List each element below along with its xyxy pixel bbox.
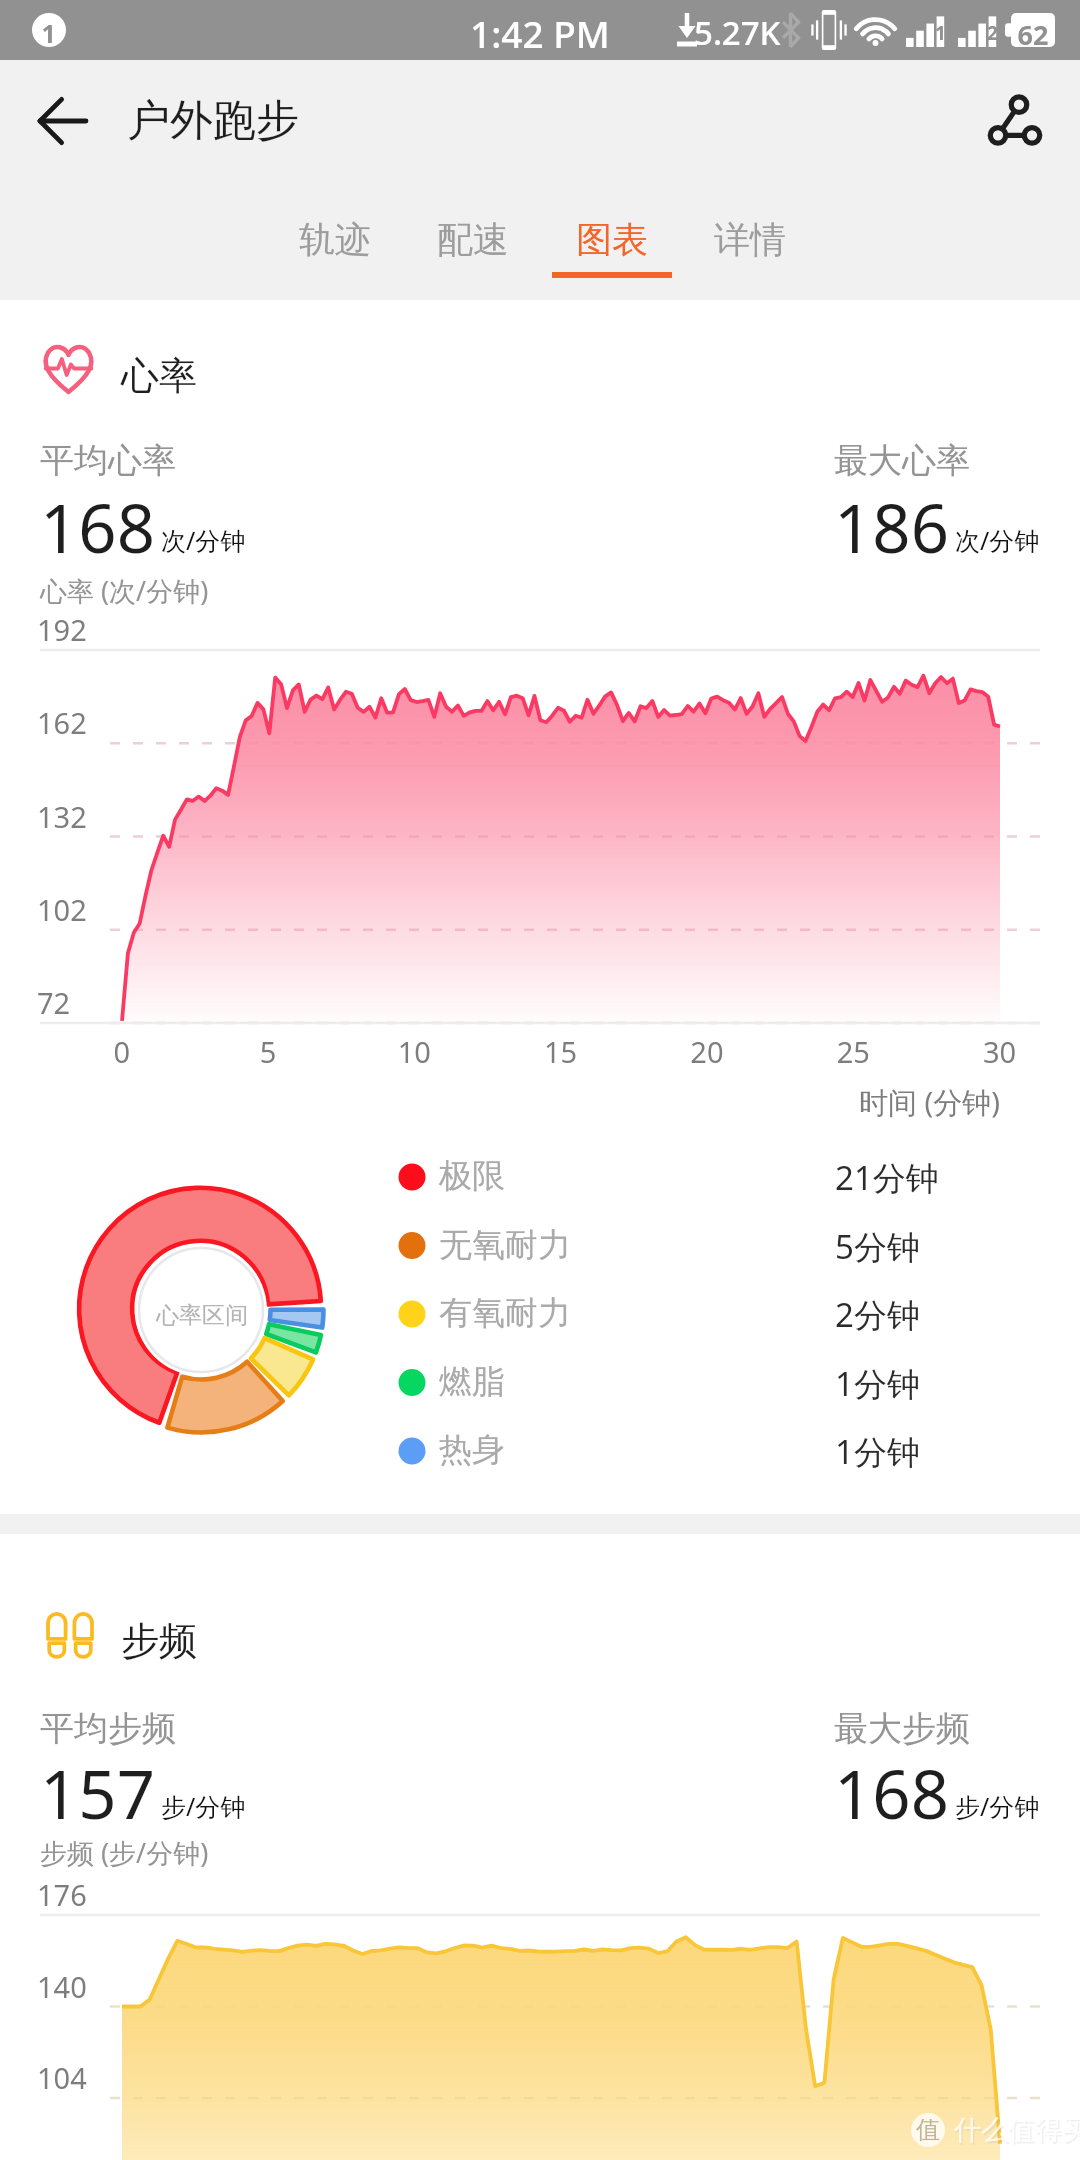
button[interactable] bbox=[558, 190, 666, 286]
button[interactable] bbox=[281, 190, 389, 286]
button[interactable]: Share bbox=[954, 72, 1052, 170]
button[interactable] bbox=[419, 190, 527, 286]
button[interactable]: Back bbox=[14, 76, 112, 174]
button[interactable] bbox=[696, 190, 804, 286]
